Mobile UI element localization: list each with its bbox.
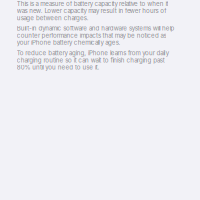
staticText: To reduce battery aging, iPhone learns f… <box>17 49 169 71</box>
staticText: This is a measure of battery capacity re… <box>17 0 168 22</box>
staticText: Built-in dynamic software and hardware s… <box>17 25 174 46</box>
